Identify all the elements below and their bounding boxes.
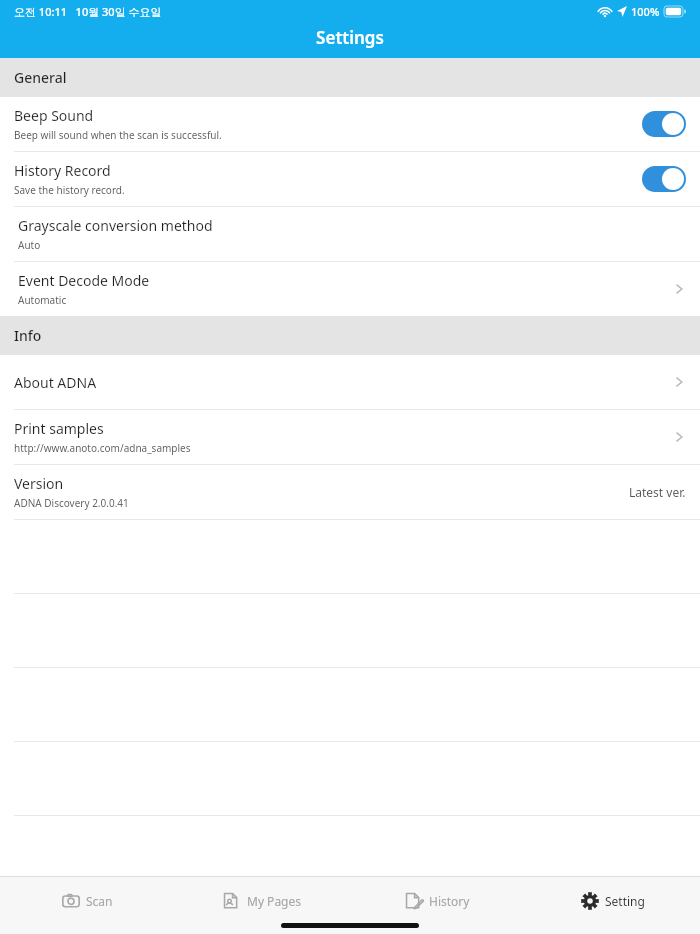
staticText: Automatic xyxy=(18,293,67,307)
staticText: History xyxy=(429,893,470,909)
staticText: ADNA Discovery 2.0.0.41 xyxy=(14,496,129,510)
staticText: http://www.anoto.com/adna_samples xyxy=(14,441,191,455)
button[interactable]: Toggle xyxy=(642,111,686,137)
staticText: Setting xyxy=(605,893,645,909)
button[interactable]: Print samples xyxy=(0,410,700,464)
button[interactable]: Grayscale conversion method xyxy=(0,207,700,261)
button[interactable]: My Pages xyxy=(175,872,350,929)
staticText: Beep will sound when the scan is success… xyxy=(14,128,222,142)
button[interactable]: Beep Sound xyxy=(0,97,700,151)
button[interactable]: Event Decode Mode xyxy=(0,262,700,316)
button[interactable]: About ADNA xyxy=(0,355,700,409)
button[interactable]: Toggle xyxy=(642,166,686,192)
staticText: Version xyxy=(14,474,64,493)
staticText: Print samples xyxy=(14,419,104,438)
staticText: 100% xyxy=(631,4,660,19)
staticText: Grayscale conversion method xyxy=(18,216,213,235)
staticText: My Pages xyxy=(247,893,302,909)
button[interactable]: Setting xyxy=(525,872,700,929)
staticText: History Record xyxy=(14,161,111,180)
staticText: Info xyxy=(14,326,42,345)
button[interactable]: History Record xyxy=(0,152,700,206)
staticText: Save the history record. xyxy=(14,183,125,197)
button[interactable]: Scan xyxy=(0,872,175,929)
staticText: 오전 10:11 10월 30일 수요일 xyxy=(14,4,162,19)
staticText: Auto xyxy=(18,238,41,252)
staticText: About ADNA xyxy=(14,373,97,392)
staticText: Latest ver. xyxy=(629,484,686,500)
staticText: Event Decode Mode xyxy=(18,271,150,290)
staticText: Scan xyxy=(86,893,113,909)
button[interactable]: Version xyxy=(0,465,700,519)
button[interactable]: History xyxy=(350,872,525,929)
staticText: General xyxy=(14,68,67,87)
staticText: Settings xyxy=(316,26,384,49)
staticText: Beep Sound xyxy=(14,106,94,125)
